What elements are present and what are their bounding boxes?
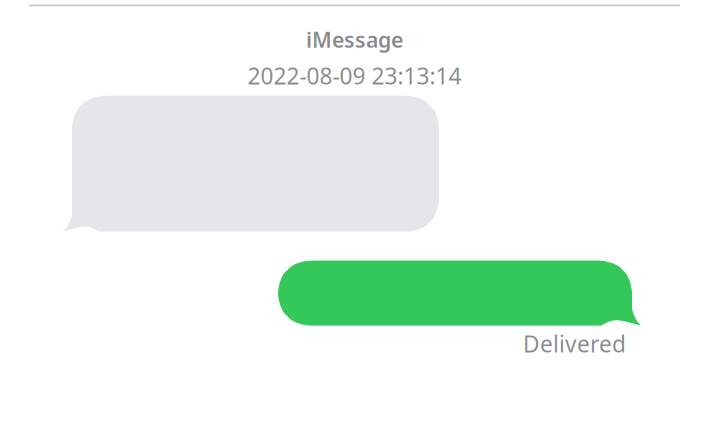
button[interactable]: Received message <box>62 96 439 232</box>
button[interactable]: Sent message <box>278 261 642 326</box>
staticText: iMessage <box>306 25 403 53</box>
staticText: Delivered <box>523 329 626 359</box>
staticText: 2022-08-09 23:13:14 <box>247 60 461 91</box>
